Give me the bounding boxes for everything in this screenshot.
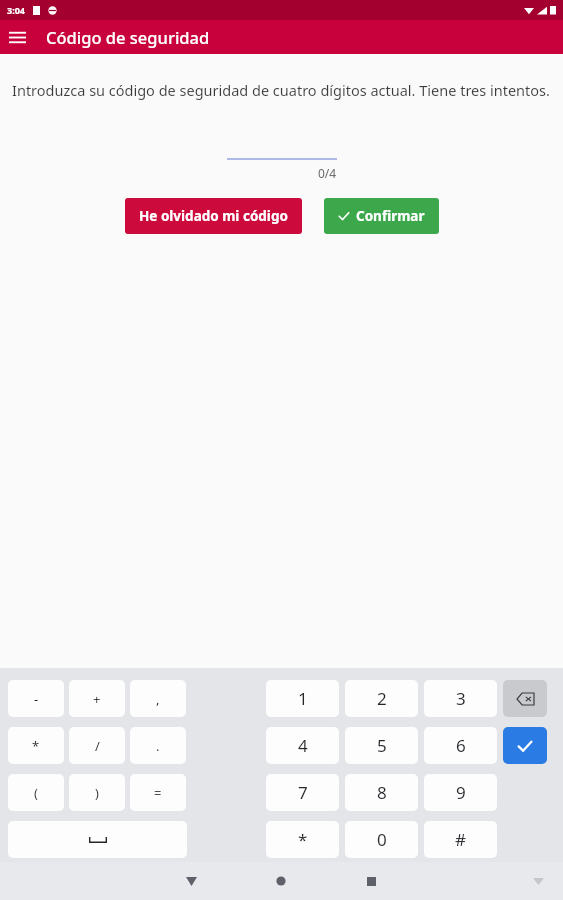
button[interactable]: 9 <box>424 774 497 811</box>
staticText: 4 <box>298 734 308 757</box>
button[interactable]: = <box>130 774 186 811</box>
button[interactable]: Confirmar <box>324 198 439 234</box>
button[interactable]: Back <box>172 862 210 900</box>
staticText: ) <box>95 784 99 802</box>
button[interactable]: 6 <box>424 727 497 764</box>
button[interactable]: 0 <box>345 821 418 858</box>
button[interactable]: , <box>130 680 186 717</box>
staticText: . <box>156 737 160 755</box>
staticText: 6 <box>456 734 466 757</box>
button[interactable]: Home <box>262 862 300 900</box>
staticText: - <box>34 690 39 708</box>
button[interactable]: ( <box>8 774 64 811</box>
button[interactable]: / <box>69 727 125 764</box>
staticText: 0 <box>377 828 387 851</box>
button[interactable]: 4 <box>266 727 339 764</box>
button[interactable]: He olvidado mi código <box>125 198 302 234</box>
button[interactable]: . <box>130 727 186 764</box>
button[interactable]: 1 <box>266 680 339 717</box>
button[interactable]: - <box>8 680 64 717</box>
staticText: / <box>95 737 100 755</box>
button[interactable]: # <box>424 821 497 858</box>
staticText: 9 <box>456 781 466 804</box>
button[interactable]: Enter <box>503 727 547 764</box>
staticText: + <box>93 690 101 708</box>
button[interactable]: 2 <box>345 680 418 717</box>
staticText: * <box>298 828 308 851</box>
staticText: 2 <box>377 687 387 710</box>
button[interactable]: Open navigation menu <box>0 20 34 54</box>
button[interactable]: 8 <box>345 774 418 811</box>
staticText: Confirmar <box>356 207 425 225</box>
staticText: = <box>154 784 162 802</box>
staticText: , <box>156 690 160 708</box>
staticText: Introduzca su código de seguridad de cua… <box>12 80 550 100</box>
button[interactable]: Recent apps <box>352 862 390 900</box>
staticText: 7 <box>298 781 308 804</box>
button[interactable]: Hide keyboard <box>519 862 557 900</box>
staticText: 3:04 <box>7 4 25 16</box>
staticText: 5 <box>377 734 387 757</box>
button[interactable]: 5 <box>345 727 418 764</box>
button[interactable]: * <box>8 727 64 764</box>
button[interactable]: 3 <box>424 680 497 717</box>
staticText: 8 <box>377 781 387 804</box>
staticText: # <box>455 828 466 851</box>
staticText: Código de seguridad <box>46 26 210 48</box>
staticText: 3 <box>456 687 466 710</box>
button[interactable]: + <box>69 680 125 717</box>
staticText: ( <box>34 784 38 802</box>
button[interactable]: 7 <box>266 774 339 811</box>
button[interactable]: Space <box>8 821 187 858</box>
button[interactable]: ) <box>69 774 125 811</box>
staticText: 1 <box>298 687 308 710</box>
button[interactable]: * <box>266 821 339 858</box>
button[interactable]: Backspace <box>503 680 547 717</box>
staticText: * <box>32 737 40 755</box>
staticText: 0/4 <box>318 165 337 181</box>
staticText: He olvidado mi código <box>139 207 288 225</box>
